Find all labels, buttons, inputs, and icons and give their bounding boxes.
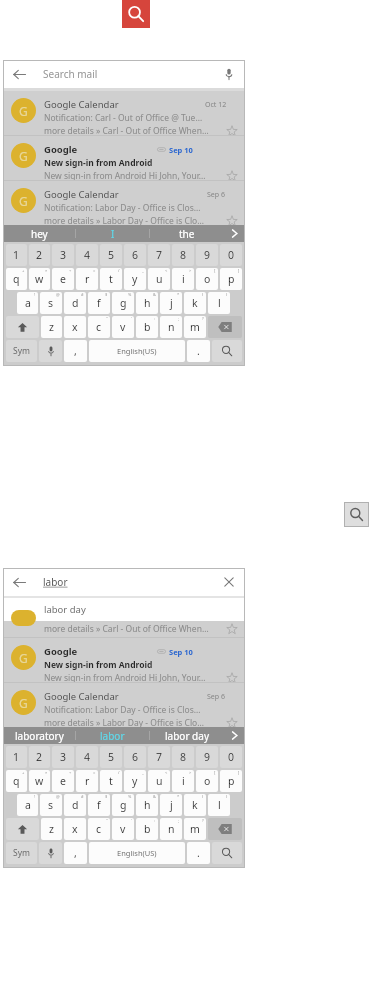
button[interactable]: j	[160, 292, 182, 314]
button[interactable]: p	[220, 770, 242, 792]
button[interactable]: p	[220, 268, 242, 290]
button[interactable]: More suggestions	[223, 225, 245, 242]
button[interactable]: d	[64, 794, 86, 816]
button[interactable]: 5	[100, 746, 122, 768]
button[interactable]: n	[160, 818, 182, 840]
button[interactable]: 9	[196, 244, 218, 266]
button[interactable]: Back	[12, 67, 27, 82]
button[interactable]: f	[88, 794, 110, 816]
button[interactable]: 8	[172, 244, 194, 266]
button[interactable]: o	[196, 268, 218, 290]
button[interactable]: n	[160, 316, 182, 338]
button[interactable]: c	[88, 818, 110, 840]
button[interactable]: v	[112, 316, 134, 338]
button[interactable]: labor day	[3, 598, 245, 621]
button[interactable]: more details » Carl - Out of Office When…	[3, 621, 245, 637]
button[interactable]: Star	[226, 215, 238, 225]
button[interactable]: m	[184, 316, 206, 338]
button[interactable]: 5	[100, 244, 122, 266]
button[interactable]: the	[150, 225, 223, 242]
button[interactable]: x	[64, 818, 86, 840]
button[interactable]: t	[100, 268, 122, 290]
button[interactable]: a	[17, 794, 38, 816]
button[interactable]: Sym	[6, 340, 37, 362]
button[interactable]: k	[184, 794, 206, 816]
button[interactable]: ,	[64, 842, 87, 864]
button[interactable]: hey	[3, 225, 75, 242]
button[interactable]: ,	[64, 340, 87, 362]
button[interactable]: g	[112, 794, 134, 816]
button[interactable]: Shift	[6, 316, 39, 338]
button[interactable]: 1	[6, 244, 27, 266]
button[interactable]: Star	[226, 125, 238, 135]
button[interactable]: 6	[124, 244, 146, 266]
button[interactable]: h	[136, 292, 158, 314]
button[interactable]: r	[76, 268, 98, 290]
button[interactable]: English(US)	[89, 842, 185, 864]
button[interactable]: k	[184, 292, 206, 314]
button[interactable]: q	[6, 268, 27, 290]
button[interactable]: 8	[172, 746, 194, 768]
button[interactable]: Search	[212, 842, 242, 864]
button[interactable]: e	[52, 268, 74, 290]
button[interactable]: l	[208, 292, 230, 314]
button[interactable]: 3	[52, 746, 74, 768]
button[interactable]: Backspace	[208, 818, 242, 840]
button[interactable]: j	[160, 794, 182, 816]
button[interactable]: Search icon	[344, 502, 369, 527]
button[interactable]: z	[41, 818, 62, 840]
button[interactable]: v	[112, 818, 134, 840]
button[interactable]: Star	[226, 717, 238, 727]
button[interactable]: w	[29, 770, 50, 792]
button[interactable]: 0	[220, 746, 242, 768]
button[interactable]: G	[3, 136, 245, 180]
button[interactable]: 2	[29, 746, 50, 768]
button[interactable]: z	[41, 316, 62, 338]
button[interactable]: i	[172, 268, 194, 290]
button[interactable]: G	[3, 91, 245, 135]
button[interactable]: s	[40, 292, 62, 314]
button[interactable]: Shift	[6, 818, 39, 840]
button[interactable]: 4	[76, 244, 98, 266]
button[interactable]: q	[6, 770, 27, 792]
button[interactable]: g	[112, 292, 134, 314]
button[interactable]: G	[3, 638, 245, 682]
button[interactable]: Clear search	[222, 575, 236, 589]
button[interactable]: laboratory	[3, 727, 75, 744]
button[interactable]: b	[136, 818, 158, 840]
button[interactable]: c	[88, 316, 110, 338]
button[interactable]: .	[187, 340, 210, 362]
button[interactable]: .	[187, 842, 210, 864]
button[interactable]: m	[184, 818, 206, 840]
button[interactable]: f	[88, 292, 110, 314]
button[interactable]: Back	[3, 568, 245, 596]
button[interactable]: Voice input	[39, 842, 62, 864]
button[interactable]: 9	[196, 746, 218, 768]
button[interactable]: d	[64, 292, 86, 314]
button[interactable]: w	[29, 268, 50, 290]
button[interactable]: s	[40, 794, 62, 816]
button[interactable]: i	[172, 770, 194, 792]
button[interactable]: G	[3, 181, 245, 225]
button[interactable]: Back	[12, 575, 27, 590]
button[interactable]: Star	[226, 672, 238, 682]
button[interactable]: a	[17, 292, 38, 314]
button[interactable]: labor day	[150, 727, 223, 744]
button[interactable]: labor	[76, 727, 149, 744]
button[interactable]: r	[76, 770, 98, 792]
button[interactable]: x	[64, 316, 86, 338]
button[interactable]: 7	[148, 746, 170, 768]
button[interactable]: Backspace	[208, 316, 242, 338]
button[interactable]: b	[136, 316, 158, 338]
button[interactable]: y	[124, 268, 146, 290]
button[interactable]: 1	[6, 746, 27, 768]
button[interactable]: y	[124, 770, 146, 792]
button[interactable]: u	[148, 770, 170, 792]
button[interactable]: English(US)	[89, 340, 185, 362]
button[interactable]: Back	[3, 60, 245, 88]
button[interactable]: 6	[124, 746, 146, 768]
button[interactable]: 2	[29, 244, 50, 266]
button[interactable]: 7	[148, 244, 170, 266]
button[interactable]: t	[100, 770, 122, 792]
button[interactable]: G	[3, 683, 245, 727]
